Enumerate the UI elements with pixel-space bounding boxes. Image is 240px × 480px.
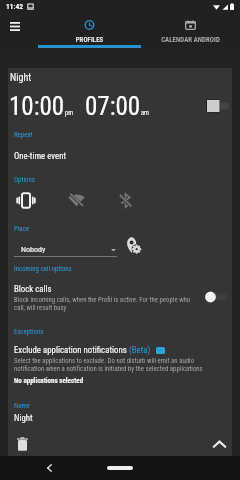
staticText: (Beta)	[129, 345, 151, 355]
button[interactable]: Home	[107, 466, 133, 470]
staticText: Exclude application notifications	[14, 345, 129, 355]
button[interactable]: CALENDAR ANDROID	[141, 0, 240, 48]
button[interactable]: Block calls toggle	[204, 290, 228, 304]
staticText: Name	[14, 402, 30, 410]
staticText: 07:00	[85, 92, 141, 121]
button[interactable]: Manage places	[123, 235, 143, 255]
staticText: Exceptions	[14, 328, 44, 336]
button[interactable]: Wi-Fi off	[65, 189, 87, 211]
staticText: 11:42	[6, 2, 23, 11]
staticText: Nobody	[21, 245, 46, 254]
staticText: pm	[65, 109, 74, 117]
staticText: Repeat	[14, 131, 33, 139]
button[interactable]: Vibration	[15, 189, 37, 211]
button[interactable]: Bluetooth off	[114, 189, 136, 211]
staticText: CALENDAR ANDROID	[141, 36, 240, 44]
staticText: Incoming call options	[14, 265, 72, 273]
staticText: Place	[14, 225, 29, 233]
staticText: 10:00	[9, 92, 65, 121]
staticText: am	[141, 109, 150, 117]
button[interactable]: Collapse	[207, 432, 231, 456]
button[interactable]: PROFILES	[38, 0, 141, 48]
staticText: Block incoming calls, when the Profil is…	[14, 296, 192, 312]
staticText: Block calls	[14, 284, 52, 294]
button[interactable]: 07:00	[85, 92, 150, 121]
staticText: Night	[10, 72, 32, 84]
button[interactable]: Exclude application notifications	[14, 345, 227, 385]
staticText: No applications selected	[14, 377, 84, 385]
button[interactable]: Open navigation drawer	[2, 14, 27, 39]
staticText: Options	[14, 176, 35, 184]
button[interactable]: Enable profile	[205, 99, 233, 113]
button[interactable]: Back	[40, 459, 58, 477]
staticText: Select the applications to exclude. Do n…	[14, 357, 208, 373]
staticText: One-time event	[14, 151, 67, 161]
button[interactable]: Delete	[10, 432, 34, 456]
button[interactable]: Nobody	[14, 245, 117, 257]
button[interactable]: Block calls	[14, 284, 227, 312]
staticText: PROFILES	[38, 36, 141, 44]
button[interactable]: 10:00	[9, 92, 74, 121]
staticText: Night	[14, 413, 33, 423]
